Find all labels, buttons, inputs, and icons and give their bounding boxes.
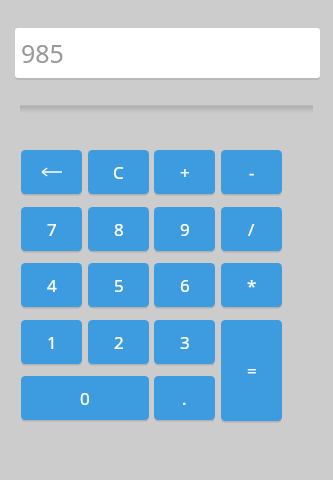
staticText: 8 bbox=[114, 218, 124, 241]
staticText: C bbox=[113, 161, 124, 184]
button[interactable]: 9 bbox=[154, 207, 215, 251]
button[interactable]: 985 bbox=[15, 28, 320, 78]
button[interactable]: = bbox=[221, 320, 282, 421]
staticText: - bbox=[249, 161, 255, 184]
staticText: / bbox=[248, 218, 255, 241]
button[interactable]: 3 bbox=[154, 320, 215, 364]
staticText: 985 bbox=[21, 36, 64, 70]
staticText: 0 bbox=[80, 387, 90, 410]
staticText: 9 bbox=[180, 218, 190, 241]
button[interactable]: 4 bbox=[21, 263, 82, 307]
button[interactable]: 6 bbox=[154, 263, 215, 307]
staticText: + bbox=[180, 161, 190, 184]
button[interactable]: - bbox=[221, 150, 282, 194]
button[interactable]: 7 bbox=[21, 207, 82, 251]
staticText: * bbox=[247, 274, 257, 297]
staticText: = bbox=[247, 359, 257, 382]
button[interactable]: Backspace bbox=[21, 150, 82, 194]
staticText: 5 bbox=[114, 274, 124, 297]
staticText: 1 bbox=[47, 331, 57, 354]
button[interactable]: C bbox=[88, 150, 149, 194]
button[interactable]: 5 bbox=[88, 263, 149, 307]
staticText: 2 bbox=[114, 331, 124, 354]
staticText: 4 bbox=[47, 274, 57, 297]
button[interactable]: 0 bbox=[21, 376, 149, 420]
button[interactable]: / bbox=[221, 207, 282, 251]
button[interactable]: 2 bbox=[88, 320, 149, 364]
button[interactable]: * bbox=[221, 263, 282, 307]
staticText: . bbox=[182, 387, 187, 410]
button[interactable]: 1 bbox=[21, 320, 82, 364]
button[interactable]: 8 bbox=[88, 207, 149, 251]
button[interactable]: + bbox=[154, 150, 215, 194]
button[interactable]: . bbox=[154, 376, 215, 420]
staticText: 7 bbox=[47, 218, 57, 241]
staticText: 3 bbox=[180, 331, 190, 354]
staticText: 6 bbox=[180, 274, 190, 297]
